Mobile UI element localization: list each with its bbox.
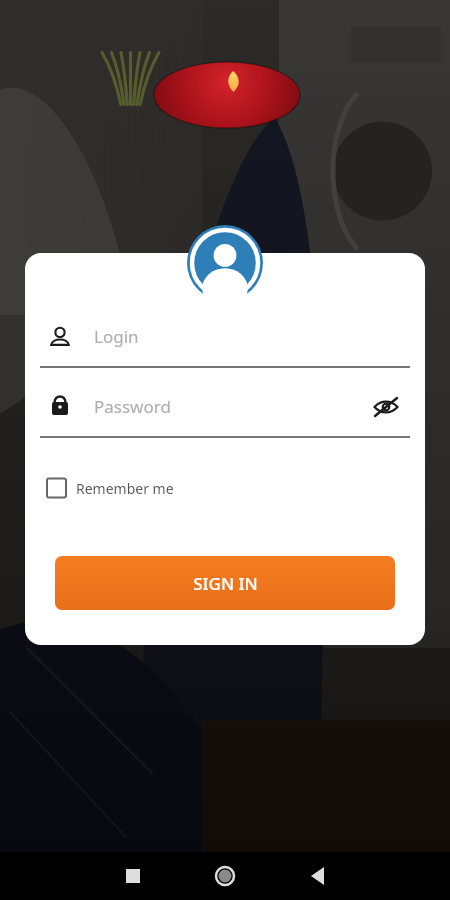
button[interactable]: Remember me	[44, 472, 204, 504]
button[interactable]: Login	[40, 313, 410, 369]
staticText: Password	[94, 395, 171, 418]
button[interactable]: Password	[40, 383, 410, 439]
staticText: Remember me	[76, 479, 174, 498]
other: User avatar	[187, 225, 263, 301]
button[interactable]: Back	[293, 852, 343, 900]
staticText: Login	[94, 325, 139, 348]
staticText: SIGN IN	[193, 572, 258, 595]
button[interactable]: Recents	[108, 852, 158, 900]
button[interactable]: Show password	[366, 387, 406, 427]
button[interactable]: Home	[200, 852, 250, 900]
button[interactable]: SIGN IN	[55, 556, 395, 610]
